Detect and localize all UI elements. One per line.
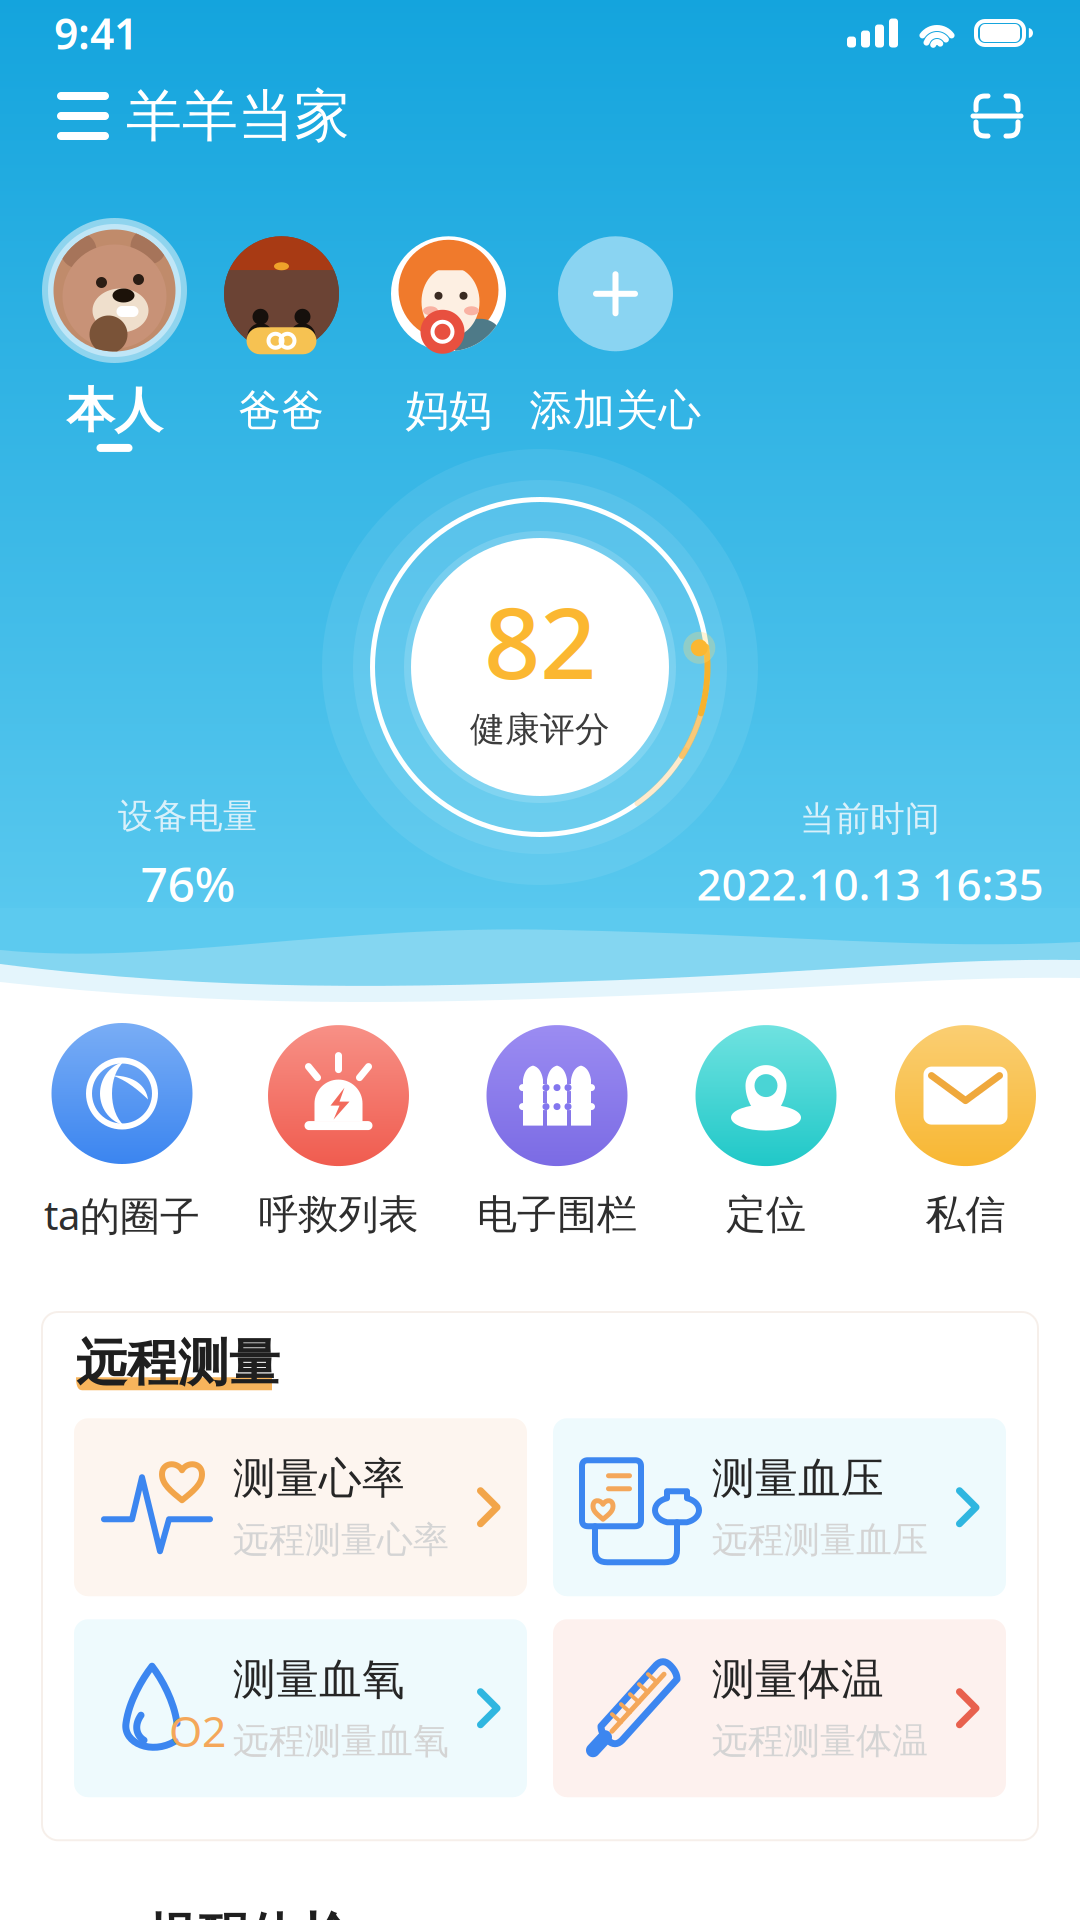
button[interactable]: 爸爸 [198, 221, 365, 437]
button[interactable]: 呼救列表 [258, 1025, 418, 1239]
button[interactable]: 定位 [695, 1025, 836, 1239]
button[interactable]: 电子围栏 [477, 1025, 637, 1239]
staticText: 2022.10.13 16:35 [696, 854, 1043, 913]
staticText: 羊羊当家 [126, 82, 350, 150]
staticText: 远程测量血氧 [233, 1719, 449, 1763]
staticText: 测量血压 [712, 1452, 884, 1505]
staticText: O2 [169, 1702, 226, 1759]
staticText: 76% [140, 852, 235, 915]
button[interactable]: O2 [74, 1619, 527, 1797]
staticText: 电子围栏 [477, 1190, 637, 1239]
staticText: 提醒体检 [147, 1906, 351, 1920]
staticText: 82 [484, 575, 596, 706]
button[interactable]: 测量心率 [74, 1418, 527, 1596]
button[interactable]: 本人 [31, 218, 198, 440]
staticText: ta的圈子 [44, 1188, 200, 1241]
button[interactable]: ta的圈子 [44, 1023, 200, 1241]
staticText: 测量心率 [233, 1452, 405, 1505]
staticText: 爸爸 [238, 384, 324, 437]
button[interactable]: 私信 [895, 1025, 1036, 1239]
staticText: 远程测量心率 [233, 1518, 449, 1562]
staticText: 远程测量血压 [712, 1518, 928, 1562]
staticText: 添加关心 [529, 384, 701, 437]
staticText: 健康评分 [470, 708, 610, 751]
button[interactable]: 妈妈 [365, 221, 532, 437]
staticText: 远程测量体温 [712, 1719, 928, 1763]
staticText: 测量血氧 [233, 1653, 405, 1706]
staticText: 测量体温 [712, 1653, 884, 1706]
button[interactable]: 测量血压 [553, 1418, 1006, 1596]
staticText: 定位 [726, 1190, 806, 1239]
button[interactable]: Scan [952, 68, 1042, 164]
staticText: 本人 [66, 381, 162, 440]
staticText: 呼救列表 [258, 1190, 418, 1239]
staticText: 当前时间 [800, 798, 940, 840]
staticText: 9:41 [54, 5, 138, 61]
button[interactable]: 添加关心 [532, 221, 699, 437]
button[interactable]: Menu [40, 68, 126, 164]
button[interactable]: 测量体温 [553, 1619, 1006, 1797]
staticText: 远程测量 [76, 1332, 280, 1394]
staticText: 私信 [925, 1190, 1005, 1239]
staticText: 妈妈 [405, 384, 491, 437]
staticText: 设备电量 [118, 795, 258, 838]
